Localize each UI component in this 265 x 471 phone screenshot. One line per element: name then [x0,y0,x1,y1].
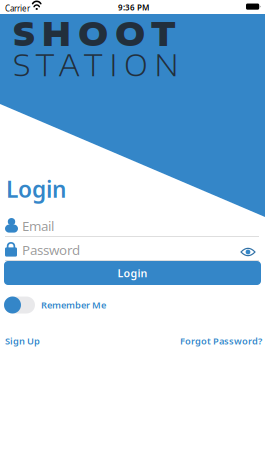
staticText: Forgot Password? [180,335,262,347]
staticText: Sign Up [5,335,40,347]
button[interactable]: Login [4,261,261,285]
staticText: 9:36 PM [118,2,149,13]
staticText: Login [117,266,147,280]
button[interactable]: Forgot Password? [180,333,262,349]
button[interactable]: Remember Me [4,296,106,314]
staticText: Email [22,217,54,235]
staticText: Login [6,174,66,204]
button[interactable]: Sign Up [5,333,40,349]
staticText: SHOOT [13,13,176,53]
button[interactable]: Show password [236,243,260,261]
staticText: Carrier [5,3,30,14]
staticText: Remember Me [41,299,106,311]
staticText: STATION [13,46,179,83]
staticText: Password [22,241,80,259]
